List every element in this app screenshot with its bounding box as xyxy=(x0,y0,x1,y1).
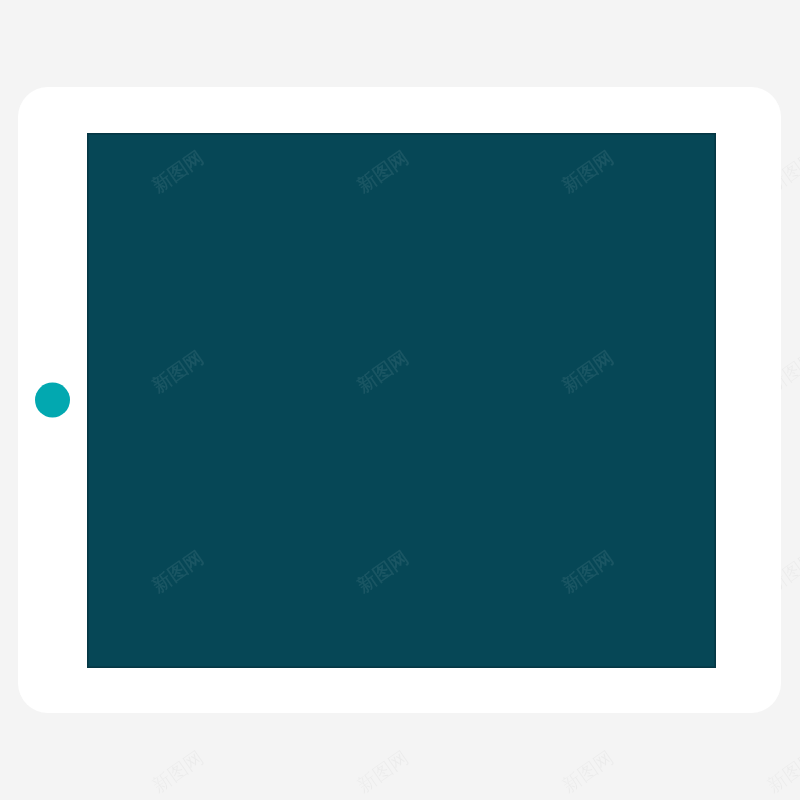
button[interactable]: Tablet device illustration xyxy=(0,0,800,800)
